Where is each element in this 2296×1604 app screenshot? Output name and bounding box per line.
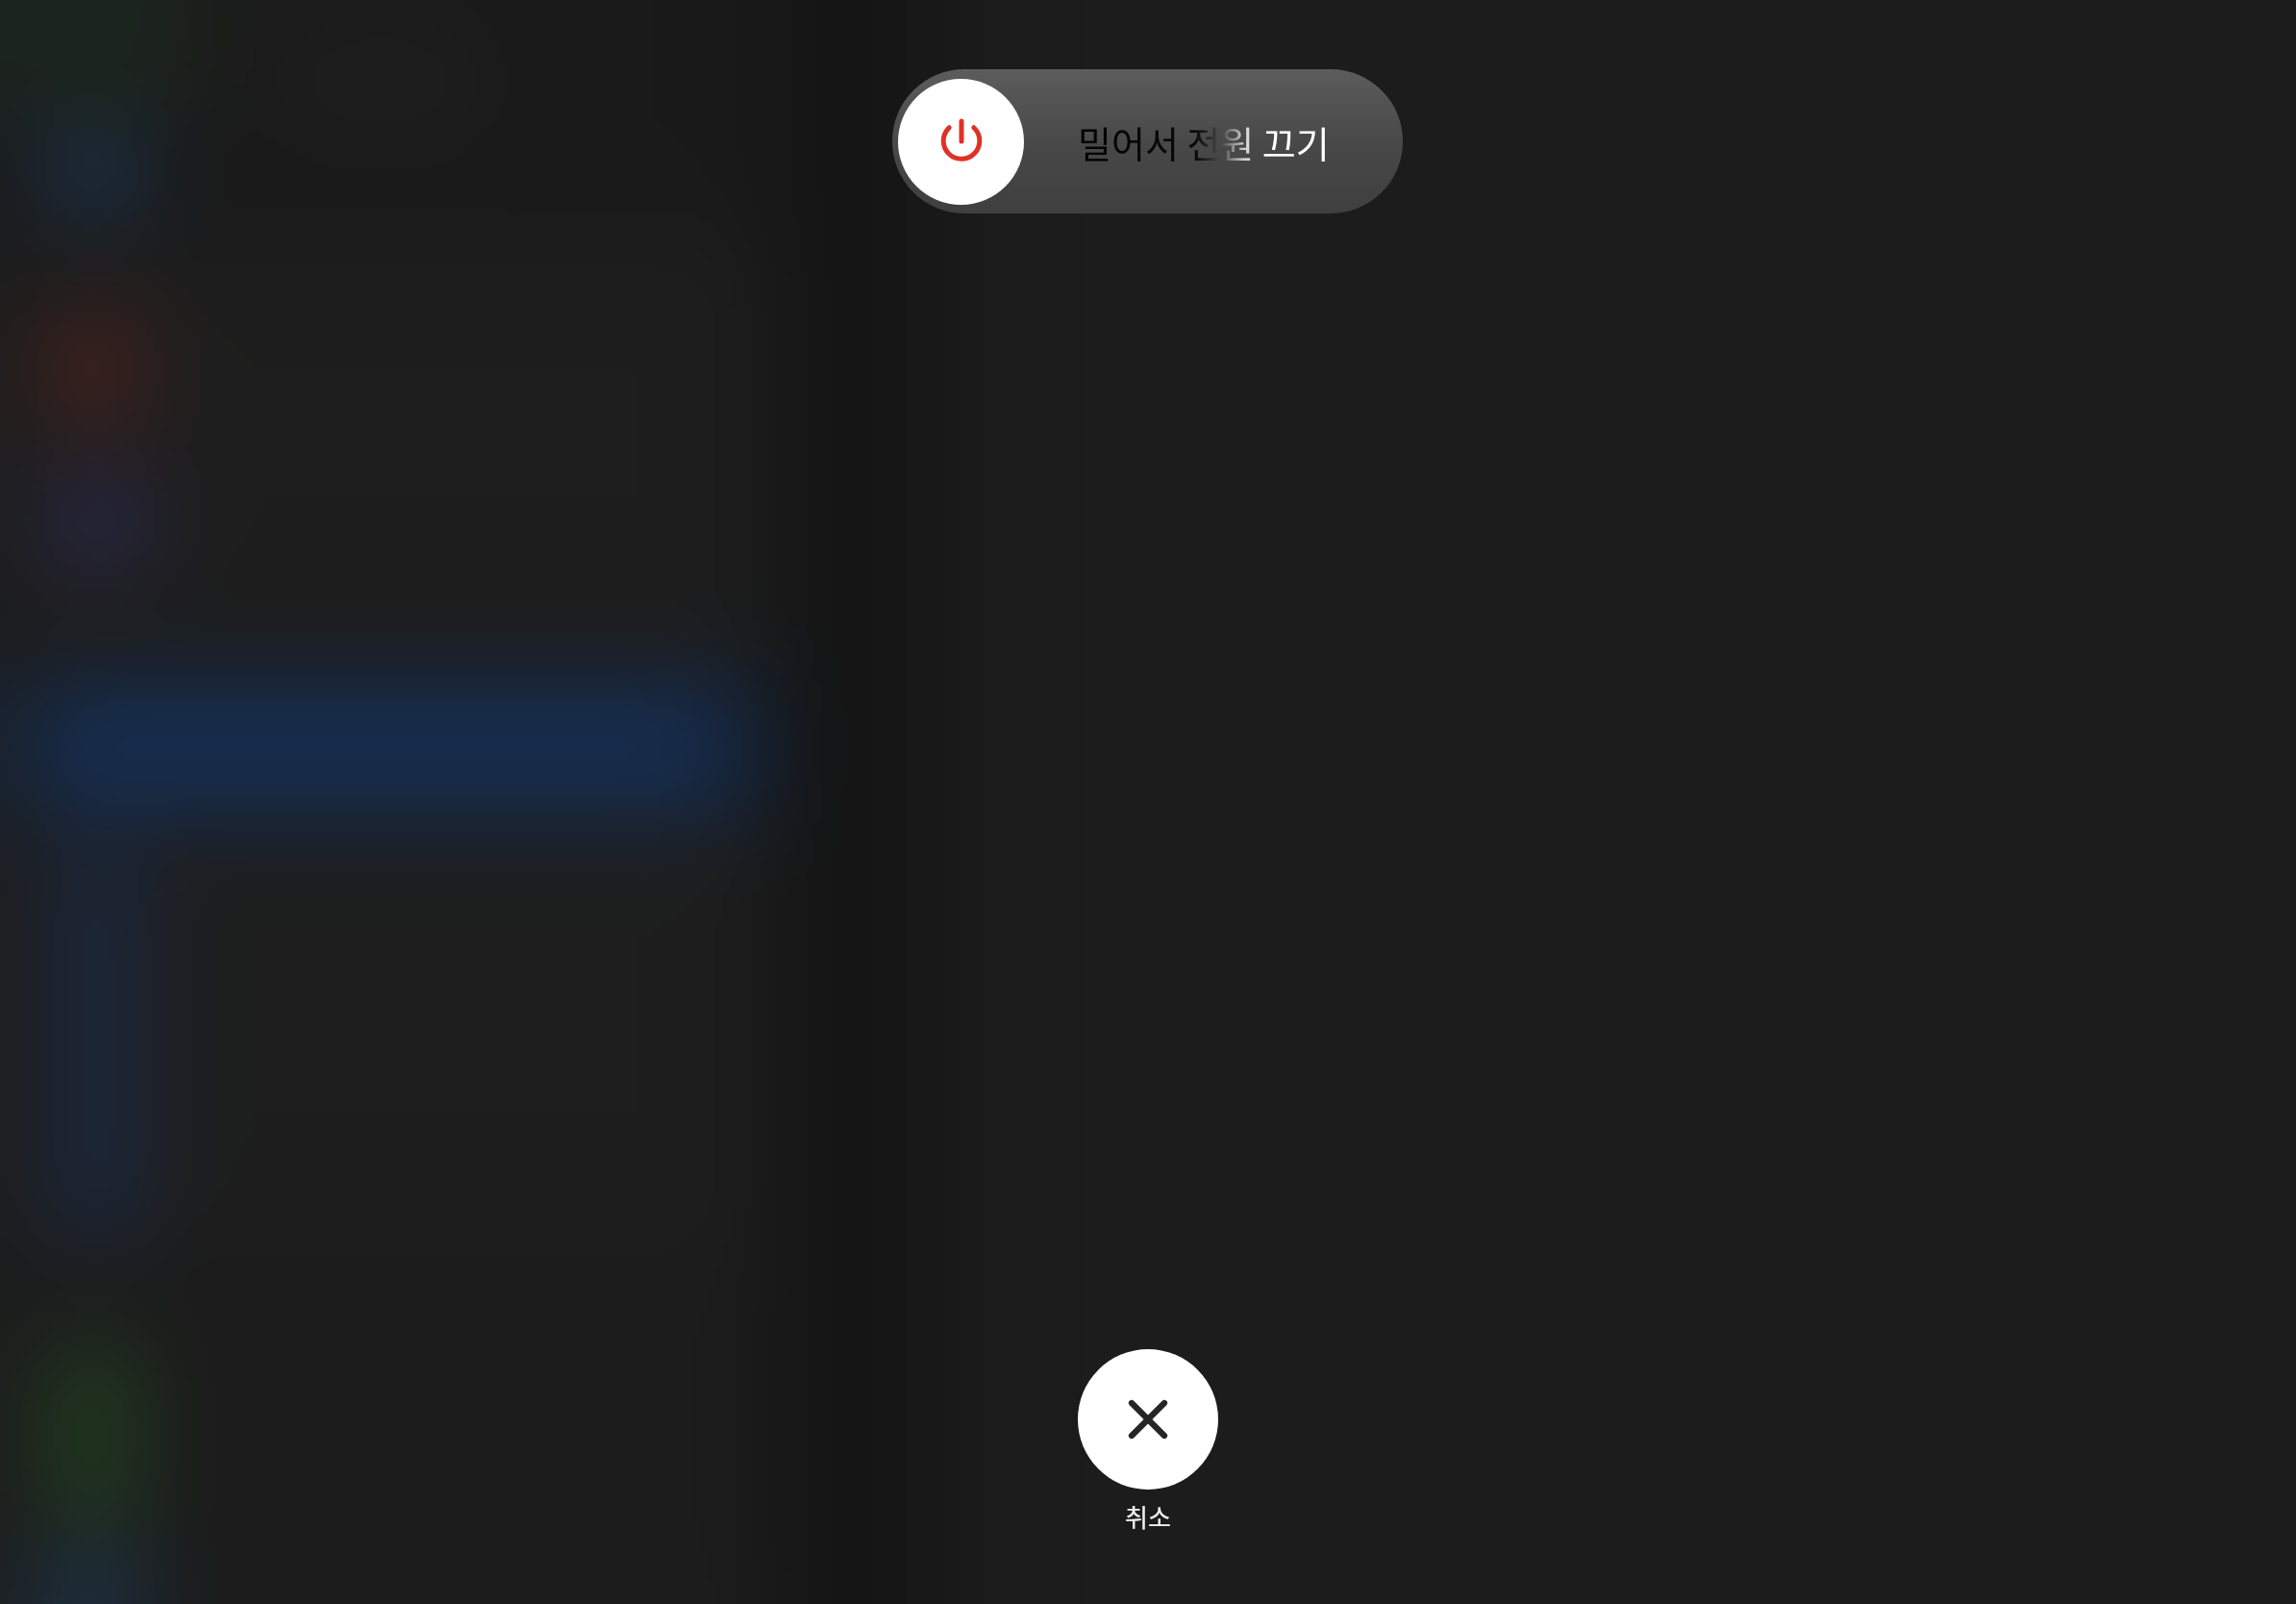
button[interactable]: Cancel	[1078, 1349, 1218, 1535]
button[interactable]: Power off	[892, 69, 1403, 213]
staticText: 밀어서 전원 끄기	[1078, 115, 1330, 168]
staticText: 취소	[1125, 1498, 1171, 1535]
other: Power off	[898, 79, 1024, 205]
